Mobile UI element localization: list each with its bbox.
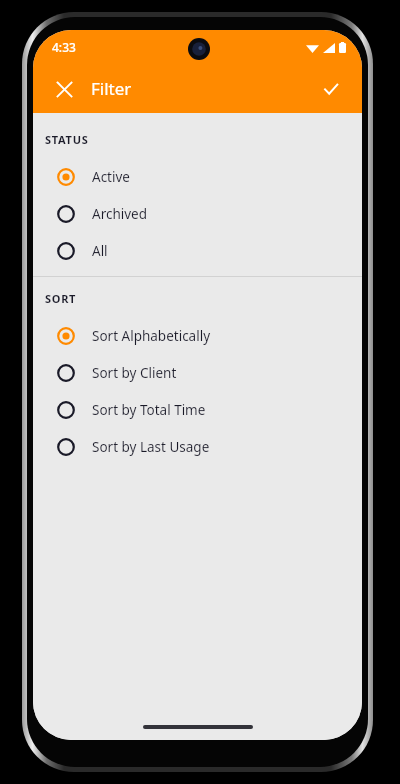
staticText: Archived [92, 205, 148, 223]
button[interactable]: Apply filter [309, 67, 353, 111]
staticText: STATUS [45, 132, 89, 147]
staticText: Sort by Total Time [92, 401, 206, 419]
button[interactable]: Active [33, 158, 362, 195]
staticText: SORT [45, 291, 77, 306]
button[interactable]: Sort Alphabetically [33, 317, 362, 354]
staticText: All [92, 242, 108, 260]
button[interactable]: Sort by Client [33, 354, 362, 391]
staticText: 4:33 [52, 39, 76, 55]
staticText: Sort by Last Usage [92, 438, 210, 456]
button[interactable]: Close [42, 67, 86, 111]
staticText: Sort by Client [92, 364, 177, 382]
staticText: Filter [91, 77, 132, 100]
staticText: Active [92, 168, 130, 186]
button[interactable]: Sort by Last Usage [33, 428, 362, 465]
button[interactable]: Archived [33, 195, 362, 232]
staticText: Sort Alphabetically [92, 327, 211, 345]
button[interactable]: All [33, 232, 362, 269]
button[interactable]: Sort by Total Time [33, 391, 362, 428]
